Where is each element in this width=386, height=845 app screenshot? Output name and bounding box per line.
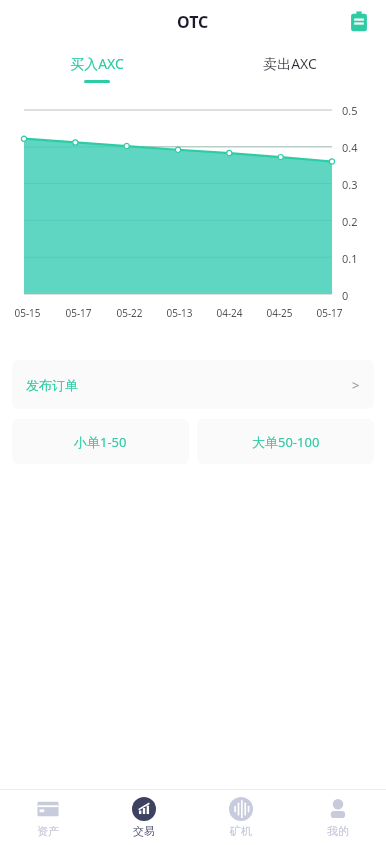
staticText: 05-17 <box>316 306 343 320</box>
staticText: 0.5 <box>342 103 358 118</box>
button[interactable]: 买入AXC <box>0 44 193 92</box>
staticText: OTC <box>177 11 209 33</box>
staticText: 0.2 <box>342 214 358 229</box>
staticText: 05-17 <box>65 306 92 320</box>
staticText: 04-24 <box>216 306 243 320</box>
staticText: 05-22 <box>116 306 143 320</box>
button[interactable]: 大单50-100 <box>197 419 374 464</box>
button[interactable]: 我的 <box>289 790 386 845</box>
staticText: 大单50-100 <box>252 433 320 451</box>
button[interactable]: 资产 <box>0 790 96 845</box>
staticText: 资产 <box>37 824 59 838</box>
staticText: 04-25 <box>266 306 293 320</box>
staticText: 0 <box>342 288 349 303</box>
button[interactable]: 发布订单 <box>12 360 374 409</box>
button[interactable]: 矿机 <box>192 790 289 845</box>
button[interactable]: 卖出AXC <box>193 44 386 92</box>
button[interactable]: 交易 <box>96 790 192 845</box>
staticText: 05-13 <box>166 306 193 320</box>
staticText: 0.1 <box>342 251 358 266</box>
staticText: 买入AXC <box>70 54 124 73</box>
button[interactable]: My orders <box>342 5 376 39</box>
staticText: 0.4 <box>342 140 358 155</box>
staticText: 矿机 <box>230 824 252 838</box>
staticText: 我的 <box>327 824 349 838</box>
staticText: 交易 <box>133 824 155 838</box>
staticText: 0.3 <box>342 177 358 192</box>
staticText: > <box>352 376 360 394</box>
staticText: 05-15 <box>14 306 41 320</box>
staticText: 发布订单 <box>26 377 78 393</box>
button[interactable]: 小单1-50 <box>12 419 189 464</box>
staticText: 卖出AXC <box>263 54 317 73</box>
staticText: 小单1-50 <box>74 433 127 451</box>
